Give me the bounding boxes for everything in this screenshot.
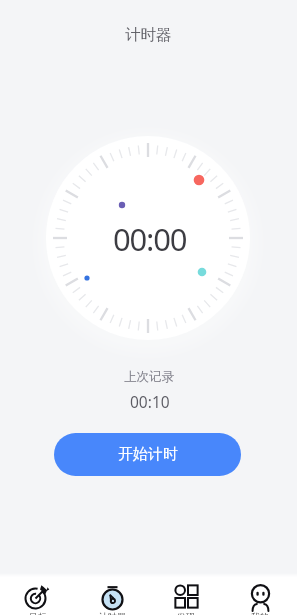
staticText: 上次记录 [124, 369, 174, 385]
button[interactable]: 我的 [223, 573, 297, 615]
other: 发现 [174, 584, 199, 609]
staticText: 计时器 [125, 25, 172, 45]
other: 我的 [248, 584, 273, 609]
staticText: 发现 [177, 611, 195, 615]
button[interactable]: 开始计时 [54, 433, 241, 476]
staticText: 开始计时 [118, 445, 178, 464]
staticText: 目标 [29, 611, 47, 615]
button[interactable]: 发现 [149, 573, 223, 615]
button[interactable]: 目标 [0, 573, 75, 615]
staticText: 计时器 [99, 611, 126, 615]
staticText: 00:10 [130, 391, 170, 412]
other: 目标 [25, 584, 50, 609]
staticText: 00:00 [113, 218, 187, 260]
staticText: 我的 [251, 611, 269, 615]
other: 计时器 [100, 584, 125, 609]
button[interactable]: 计时器 [75, 573, 149, 615]
